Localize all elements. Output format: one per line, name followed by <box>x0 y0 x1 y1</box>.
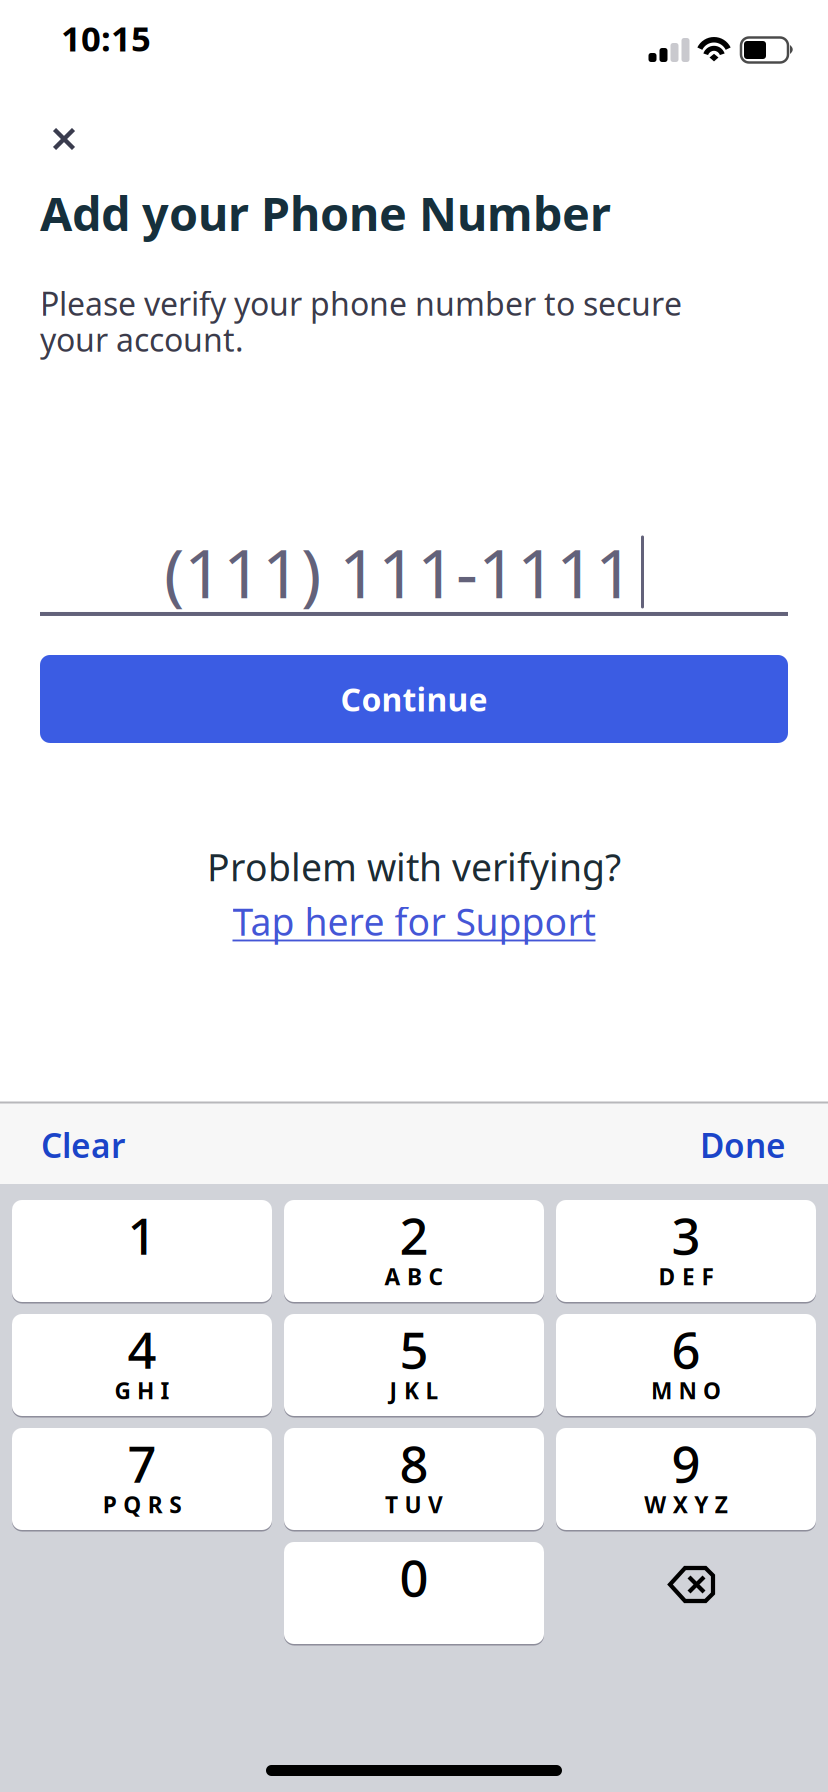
button[interactable]: 9 <box>556 1428 816 1530</box>
staticText: 7 <box>127 1429 156 1497</box>
staticText: 5 <box>399 1315 428 1383</box>
staticText: Clear <box>41 1123 125 1167</box>
staticText: ABC <box>384 1261 443 1291</box>
staticText: GHI <box>114 1375 169 1405</box>
staticText: 4 <box>127 1315 156 1383</box>
staticText: (111) 111-1111 <box>164 527 634 617</box>
staticText: 8 <box>399 1429 428 1497</box>
staticText: 10:15 <box>61 15 151 61</box>
button[interactable]: Delete <box>556 1542 816 1644</box>
staticText: your account. <box>40 318 244 360</box>
staticText: 1 <box>127 1201 156 1269</box>
staticText: Done <box>700 1123 786 1167</box>
button[interactable]: 6 <box>556 1314 816 1416</box>
staticText: WXYZ <box>644 1489 728 1519</box>
staticText: Problem with verifying? <box>207 842 621 892</box>
button[interactable]: Close <box>0 88 94 169</box>
button[interactable]: Done <box>680 1105 828 1183</box>
staticText: TUV <box>385 1489 443 1519</box>
button[interactable]: Clear <box>0 1105 145 1183</box>
staticText: 0 <box>399 1543 428 1611</box>
staticText: 3 <box>671 1201 700 1269</box>
staticText: Continue <box>340 678 487 720</box>
staticText: Please verify your phone number to secur… <box>40 282 682 324</box>
button[interactable]: 5 <box>284 1314 544 1416</box>
staticText: Tap here for Support <box>232 896 595 946</box>
button[interactable]: 2 <box>284 1200 544 1302</box>
button[interactable]: Tap here for Support <box>232 896 595 946</box>
staticText: MNO <box>651 1375 721 1405</box>
staticText: PQRS <box>103 1489 181 1519</box>
button[interactable]: 1 <box>12 1200 272 1302</box>
staticText: JKL <box>389 1375 438 1405</box>
button[interactable]: 3 <box>556 1200 816 1302</box>
staticText: 6 <box>671 1315 700 1383</box>
button[interactable]: 7 <box>12 1428 272 1530</box>
staticText: Add your Phone Number <box>40 182 611 244</box>
button[interactable]: 0 <box>284 1542 544 1644</box>
button[interactable]: 4 <box>12 1314 272 1416</box>
staticText: DEF <box>658 1261 713 1291</box>
button[interactable]: Continue <box>40 655 788 743</box>
staticText: 9 <box>671 1429 700 1497</box>
staticText: 2 <box>399 1201 428 1269</box>
button[interactable]: 8 <box>284 1428 544 1530</box>
